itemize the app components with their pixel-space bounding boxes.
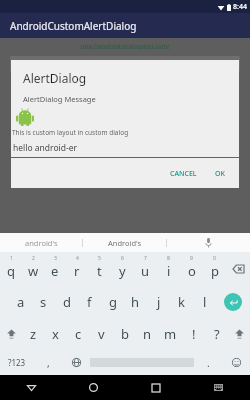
button[interactable]: c: [67, 318, 90, 350]
staticText: d: [63, 293, 71, 311]
button[interactable]: 3: [44, 252, 66, 286]
button[interactable]: android's: [0, 233, 82, 252]
staticText: .: [207, 356, 210, 370]
staticText: CANCEL: [170, 169, 197, 179]
button[interactable]: !: [182, 318, 205, 350]
staticText: 9: [190, 255, 193, 262]
staticText: hello android-er: [13, 142, 77, 154]
staticText: v: [98, 325, 105, 343]
staticText: g: [109, 293, 117, 311]
staticText: f: [87, 293, 92, 311]
button[interactable]: b: [113, 318, 136, 350]
staticText: q: [7, 262, 15, 280]
staticText: android's: [25, 238, 58, 248]
staticText: 0: [213, 255, 216, 262]
staticText: n: [143, 325, 152, 343]
button[interactable]: 0: [203, 252, 226, 286]
button[interactable]: d: [55, 286, 78, 318]
button[interactable]: s: [32, 286, 55, 318]
staticText: l: [203, 293, 207, 311]
button[interactable]: 2: [22, 252, 44, 286]
button[interactable]: 9: [180, 252, 203, 286]
staticText: 3: [54, 255, 57, 262]
button[interactable]: Voice input: [167, 233, 250, 252]
button[interactable]: CANCEL: [164, 166, 203, 182]
staticText: 8:44: [233, 2, 247, 12]
staticText: u: [141, 262, 150, 280]
button[interactable]: Android's: [83, 233, 166, 252]
staticText: 8: [167, 255, 170, 262]
button[interactable]: http://android-er.blogspot.com/: [80, 42, 170, 50]
staticText: !: [192, 325, 196, 343]
button[interactable]: z: [22, 318, 44, 350]
staticText: b: [121, 325, 129, 343]
staticText: s: [40, 293, 47, 311]
button[interactable]: f: [78, 286, 101, 318]
button[interactable]: 8: [157, 252, 180, 286]
button[interactable]: OK: [209, 166, 231, 182]
button[interactable]: ?: [205, 318, 228, 350]
staticText: Android's: [108, 238, 142, 248]
staticText: m: [164, 325, 177, 343]
staticText: OK: [215, 169, 225, 179]
staticText: 7: [144, 255, 147, 262]
staticText: 5: [98, 255, 101, 262]
staticText: 6: [121, 255, 124, 262]
button[interactable]: Home: [62, 375, 124, 400]
staticText: y: [119, 262, 126, 280]
staticText: 2: [32, 255, 35, 262]
staticText: z: [30, 325, 37, 343]
button[interactable]: Recents: [124, 375, 187, 400]
button[interactable]: .: [194, 350, 222, 375]
staticText: x: [52, 325, 59, 343]
staticText: j: [157, 293, 161, 311]
button[interactable]: 6: [111, 252, 134, 286]
button[interactable]: 1: [0, 252, 22, 286]
button[interactable]: Enter: [216, 286, 250, 318]
button[interactable]: OPEN DIALOG: [10, 56, 240, 72]
button[interactable]: Back: [0, 375, 62, 400]
button[interactable]: Switch keyboard: [187, 375, 250, 400]
button[interactable]: v: [90, 318, 113, 350]
staticText: AlertDialog Message: [23, 94, 96, 104]
button[interactable]: l: [193, 286, 216, 318]
button[interactable]: j: [147, 286, 170, 318]
staticText: o: [188, 262, 196, 280]
button[interactable]: Change language: [62, 350, 90, 375]
staticText: AndroidCustomAlertDialog: [10, 19, 137, 33]
staticText: c: [75, 325, 82, 343]
button[interactable]: Shift: [0, 318, 22, 350]
button[interactable]: h: [124, 286, 147, 318]
button[interactable]: m: [159, 318, 182, 350]
staticText: a: [17, 293, 25, 311]
button[interactable]: 7: [134, 252, 157, 286]
staticText: ?: [214, 325, 220, 343]
button[interactable]: 5: [88, 252, 111, 286]
button[interactable]: Emoji: [222, 350, 250, 375]
staticText: w: [28, 262, 39, 280]
staticText: AlertDialog: [23, 70, 87, 86]
button[interactable]: Shift: [228, 318, 250, 350]
staticText: e: [51, 262, 59, 280]
button[interactable]: ?123: [0, 350, 34, 375]
button[interactable]: g: [101, 286, 124, 318]
button[interactable]: ,: [34, 350, 62, 375]
button[interactable]: x: [44, 318, 67, 350]
staticText: h: [131, 293, 140, 311]
staticText: r: [74, 262, 80, 280]
button[interactable]: n: [136, 318, 159, 350]
staticText: ?123: [8, 357, 26, 368]
button[interactable]: 4: [66, 252, 88, 286]
staticText: OPEN DIALOG: [101, 59, 149, 69]
staticText: 1: [10, 255, 13, 262]
staticText: ,: [47, 356, 50, 370]
staticText: p: [211, 262, 219, 280]
staticText: 4: [76, 255, 79, 262]
button[interactable]: k: [170, 286, 193, 318]
staticText: This is custom layout in custom dialog: [12, 128, 129, 137]
staticText: t: [97, 262, 102, 280]
button[interactable]: a: [10, 286, 32, 318]
button[interactable]: Backspace: [226, 252, 250, 286]
staticText: k: [178, 293, 185, 311]
